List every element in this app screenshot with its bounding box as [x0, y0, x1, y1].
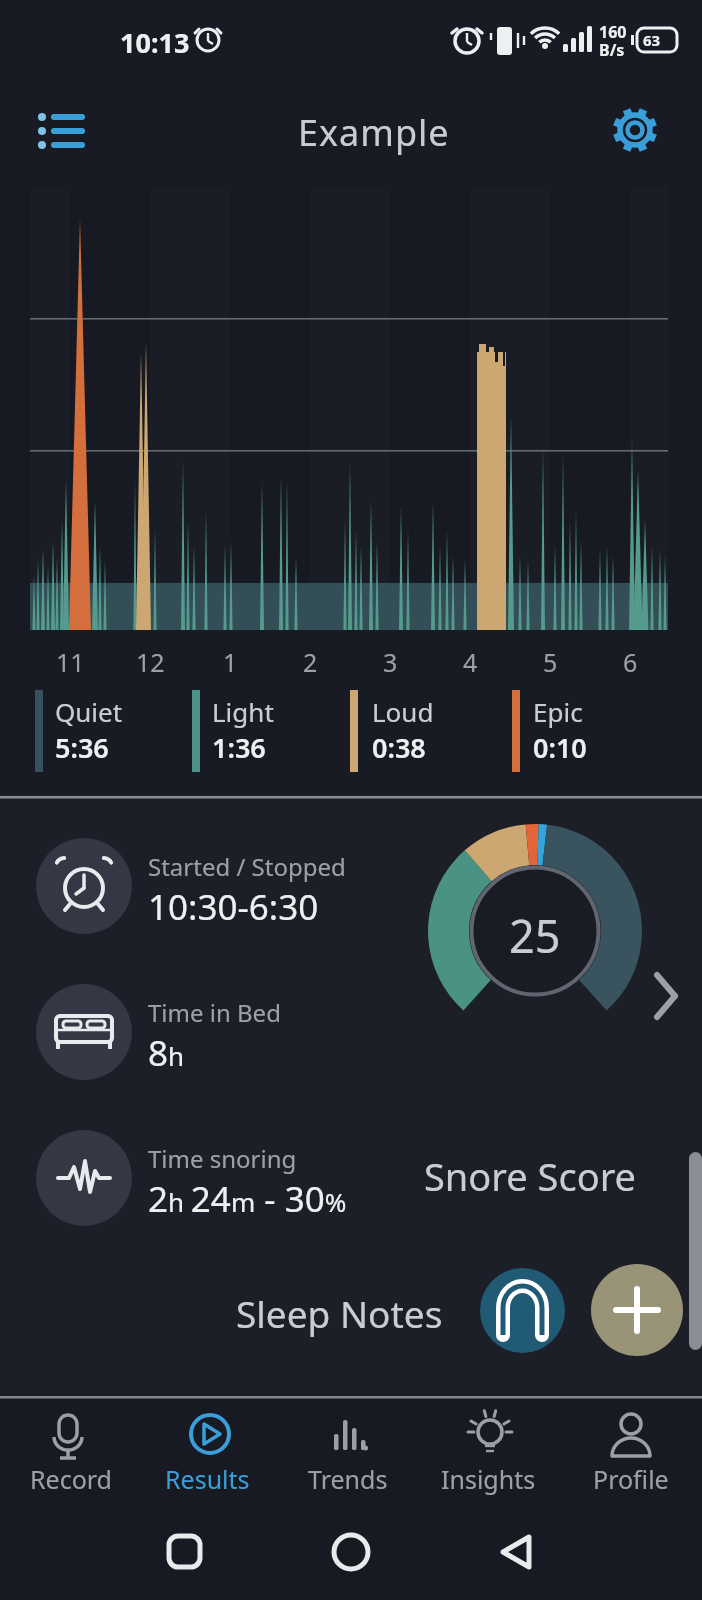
staticText: Epic [533, 694, 583, 729]
staticText: 11 [56, 645, 85, 679]
button[interactable]: Loud [372, 694, 434, 766]
staticText: 5:36 [55, 729, 109, 766]
staticText: Time in Bed [148, 996, 281, 1029]
staticText: Record [30, 1462, 112, 1496]
staticText: Started / Stopped [148, 850, 346, 883]
button[interactable]: Time in Bed [148, 996, 281, 1077]
button[interactable]: Time snoring [148, 1142, 347, 1223]
button[interactable]: Insights [436, 1404, 541, 1496]
staticText: 6 [623, 645, 638, 679]
button[interactable]: Quiet [55, 694, 123, 766]
button[interactable] [480, 1268, 565, 1353]
staticText: 10:30-6:30 [148, 883, 319, 931]
button[interactable] [428, 824, 688, 1039]
button[interactable]: Record [18, 1404, 123, 1496]
staticText: 3 [383, 645, 398, 679]
staticText: B/s [599, 39, 625, 61]
button[interactable] [26, 100, 98, 160]
button[interactable]: Results [155, 1404, 260, 1496]
staticText: 8h [148, 1029, 185, 1077]
button[interactable]: Profile [578, 1404, 683, 1496]
staticText: Light [212, 694, 274, 729]
staticText: 63 [643, 30, 661, 50]
staticText: 4 [463, 645, 478, 679]
staticText: Loud [372, 694, 434, 729]
staticText: Sleep Notes [236, 1288, 443, 1338]
button[interactable]: Started / Stopped [148, 850, 346, 931]
staticText: 1 [223, 645, 238, 679]
button[interactable] [605, 100, 665, 160]
button[interactable]: Epic [533, 694, 587, 766]
staticText: Snore Score [424, 1150, 637, 1202]
button[interactable]: Light [212, 694, 274, 766]
staticText: Quiet [55, 694, 123, 729]
staticText: 2 [303, 645, 318, 679]
button[interactable] [0, 1397, 702, 1507]
staticText: Trends [308, 1462, 388, 1496]
staticText: Insights [441, 1462, 536, 1496]
button[interactable]: Trends [295, 1404, 400, 1496]
staticText: 5 [543, 645, 558, 679]
staticText: 25 [509, 905, 561, 966]
staticText: 10:13 [120, 24, 190, 61]
staticText: 1:36 [212, 729, 266, 766]
staticText: Profile [593, 1462, 669, 1496]
button[interactable] [591, 1264, 683, 1356]
staticText: 12 [136, 645, 165, 679]
staticText: 0:10 [533, 729, 587, 766]
staticText: Example [298, 108, 450, 157]
staticText: 160 [599, 21, 627, 43]
staticText: Results [165, 1462, 250, 1496]
staticText: 2h 24m - 30% [148, 1175, 347, 1223]
staticText: Time snoring [148, 1142, 297, 1175]
staticText: 0:38 [372, 729, 426, 766]
